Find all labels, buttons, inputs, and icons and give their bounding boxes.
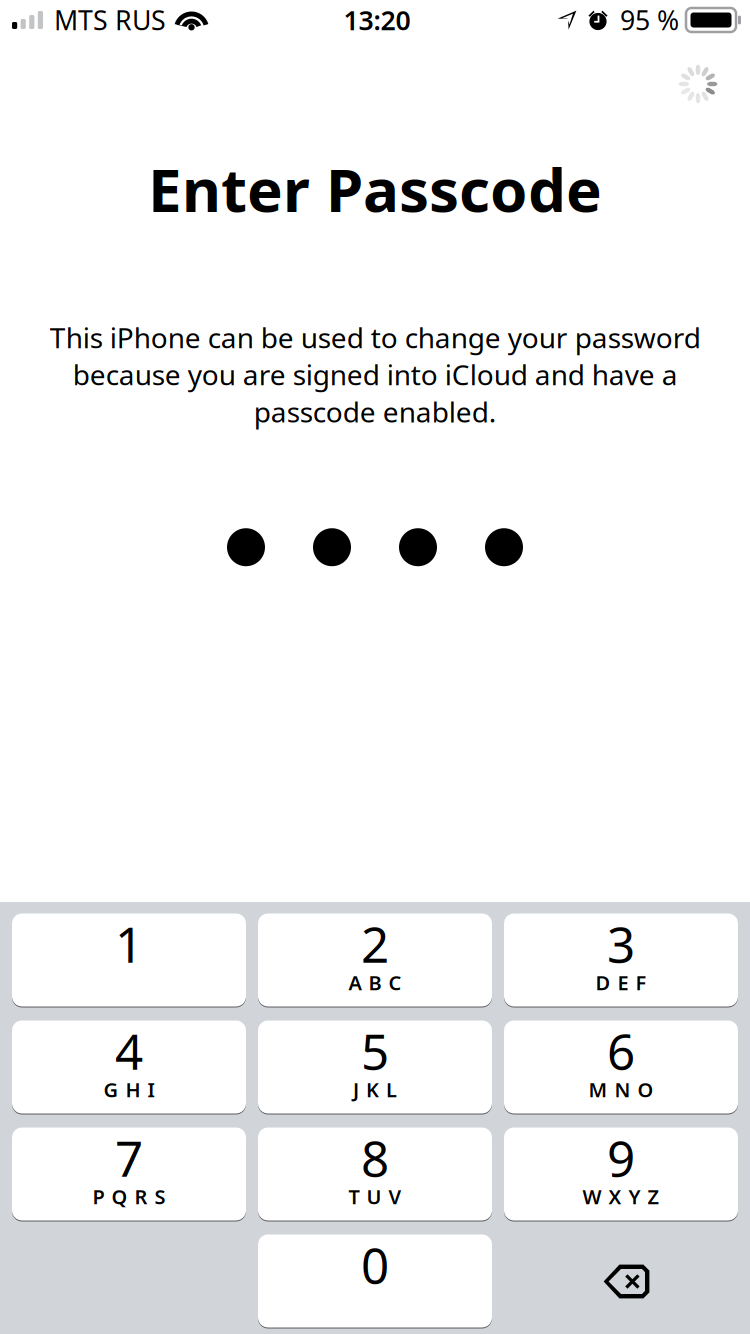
staticText: DEF [595, 969, 646, 996]
button[interactable]: 4 [12, 1021, 246, 1114]
staticText: Enter Passcode [148, 149, 602, 229]
button[interactable]: 8 [258, 1128, 492, 1221]
staticText: 5 [361, 1018, 389, 1083]
button[interactable]: 1 [12, 914, 246, 1007]
staticText: 13:20 [343, 2, 410, 38]
staticText: PQRS [92, 1183, 165, 1210]
button[interactable]: 3 [504, 914, 738, 1007]
button[interactable]: 2 [258, 914, 492, 1007]
staticText: TUV [348, 1183, 401, 1210]
staticText: This iPhone can be used to change your p… [49, 319, 700, 430]
staticText: 3 [607, 911, 635, 976]
staticText: 8 [361, 1125, 389, 1190]
staticText: 0 [361, 1232, 389, 1297]
staticText: 2 [361, 911, 389, 976]
button[interactable]: 9 [504, 1128, 738, 1221]
staticText: WXYZ [582, 1183, 659, 1210]
button[interactable]: 5 [258, 1021, 492, 1114]
button[interactable]: Delete [504, 1235, 738, 1328]
button[interactable]: 6 [504, 1021, 738, 1114]
staticText: 4 [115, 1018, 143, 1083]
staticText: 95 % [620, 2, 679, 38]
staticText: 7 [115, 1125, 143, 1190]
staticText: 9 [607, 1125, 635, 1190]
button[interactable]: 0 [258, 1235, 492, 1328]
button[interactable]: 7 [12, 1128, 246, 1221]
staticText: 1 [115, 911, 143, 976]
staticText: MNO [588, 1076, 653, 1103]
staticText: JKL [353, 1076, 397, 1103]
staticText: 6 [607, 1018, 635, 1083]
staticText: GHI [103, 1076, 154, 1103]
staticText: ABC [348, 969, 401, 996]
staticText: MTS RUS [54, 2, 166, 38]
